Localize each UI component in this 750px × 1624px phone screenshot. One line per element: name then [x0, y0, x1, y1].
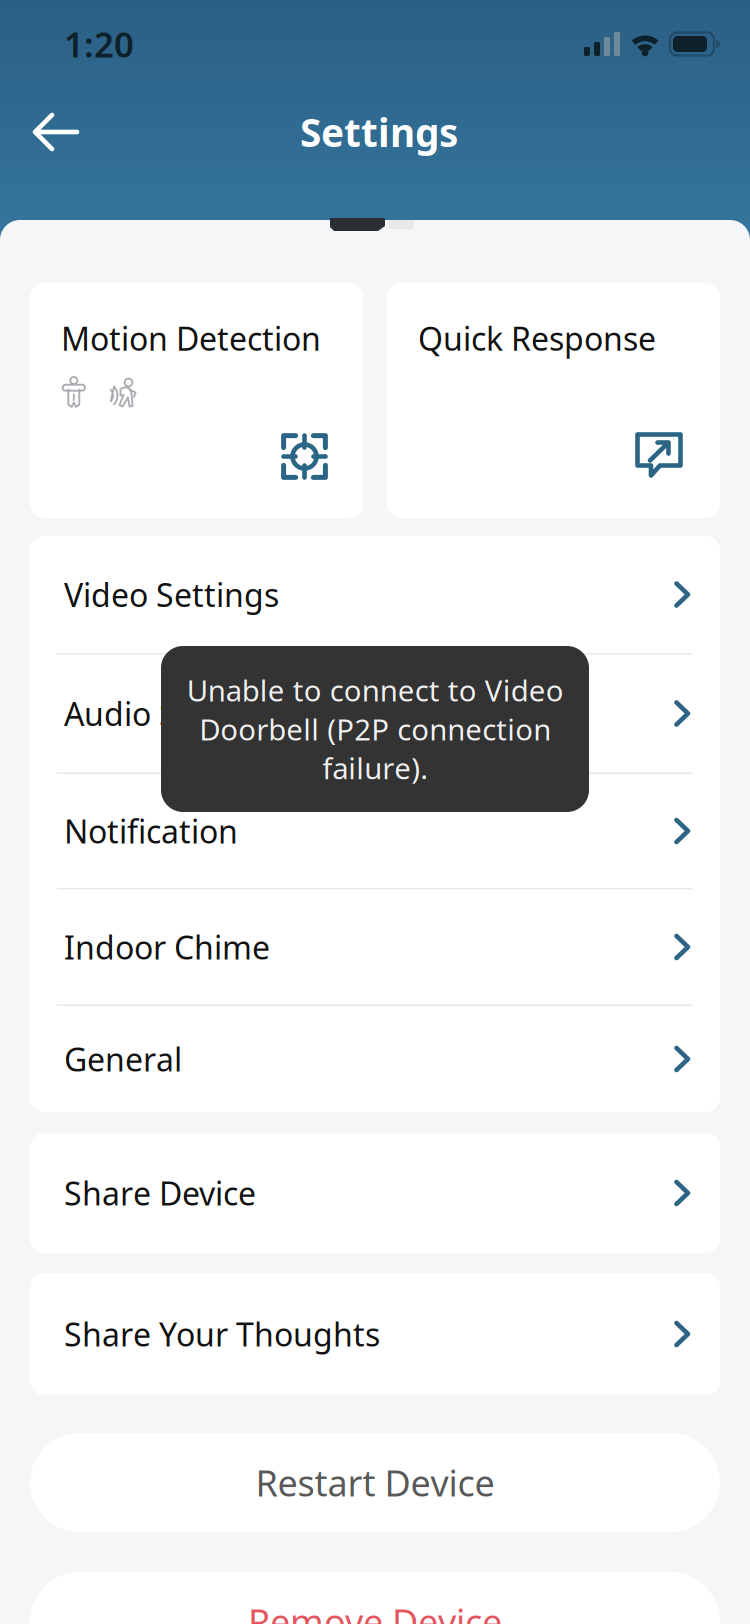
button[interactable]: Share Device: [30, 1133, 720, 1253]
button[interactable]: Quick Response: [387, 283, 720, 518]
staticText: Audio Settings: [64, 692, 282, 735]
staticText: Quick Response: [418, 317, 656, 359]
staticText: Share Device: [64, 1172, 256, 1214]
staticText: Share Your Thoughts: [64, 1313, 380, 1355]
staticText: Remove Device: [248, 1598, 502, 1624]
staticText: Settings: [300, 106, 458, 158]
button[interactable]: Motion Detection: [30, 283, 363, 518]
button[interactable]: Notification: [30, 774, 720, 888]
button[interactable]: Video Settings: [30, 536, 720, 653]
button[interactable]: General: [30, 1006, 720, 1112]
staticText: Motion Detection: [61, 317, 321, 359]
staticText: Unable to connect to Video Doorbell (P2P…: [186, 671, 563, 787]
staticText: Restart Device: [255, 1459, 494, 1506]
button[interactable]: Share Your Thoughts: [30, 1273, 720, 1395]
button[interactable]: Restart Device: [30, 1433, 720, 1532]
button[interactable]: Indoor Chime: [30, 889, 720, 1004]
staticText: Indoor Chime: [64, 926, 270, 968]
staticText: Video Settings: [64, 573, 279, 616]
staticText: Notification: [64, 810, 238, 852]
staticText: General: [64, 1038, 182, 1080]
button[interactable]: Audio Settings: [30, 654, 720, 772]
button[interactable]: Remove Device: [30, 1572, 720, 1624]
button[interactable]: Back: [8, 88, 104, 176]
staticText: 1:20: [64, 21, 134, 67]
